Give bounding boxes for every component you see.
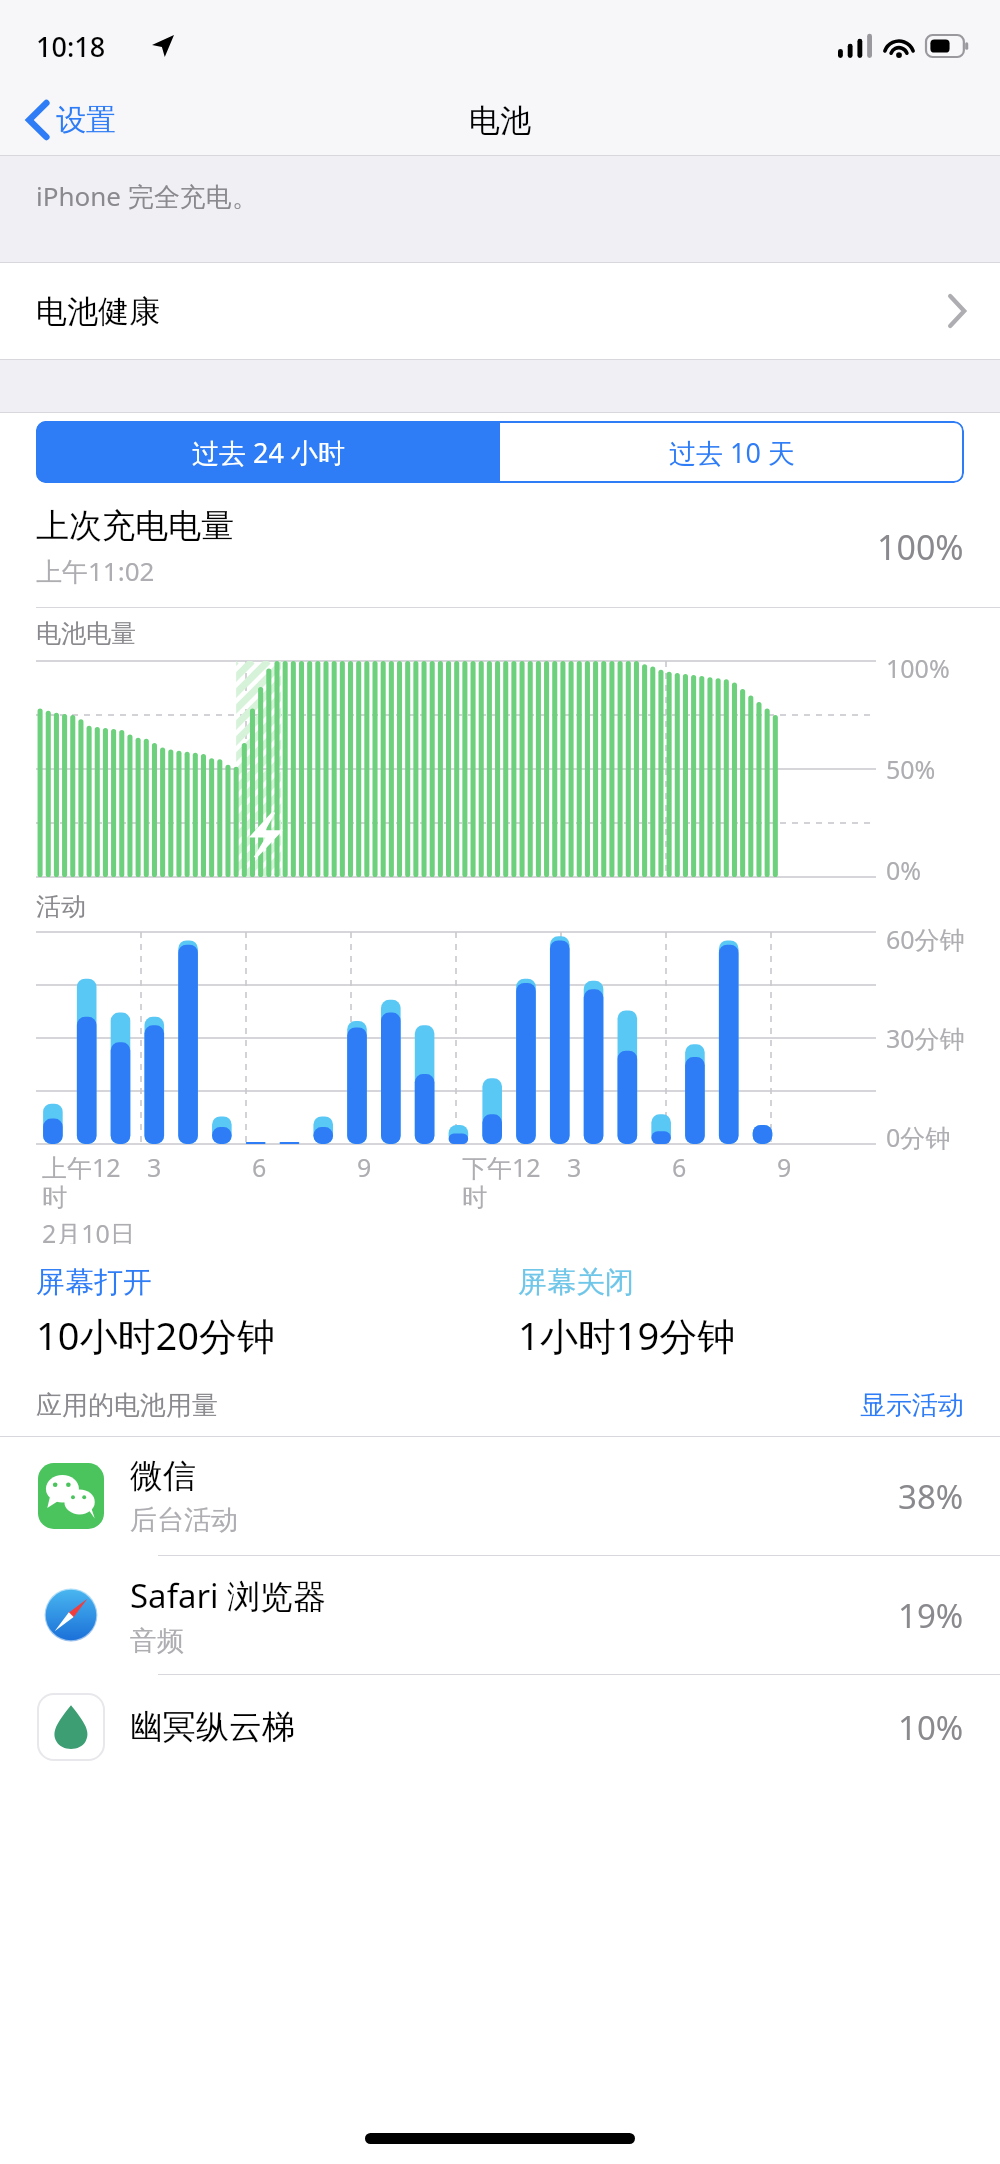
staticText: 微信 — [130, 1455, 196, 1497]
staticText: 上午11:02 — [36, 553, 155, 589]
button[interactable]: 设置 — [20, 95, 124, 145]
staticText: 上午12 时 — [42, 1150, 121, 1214]
staticText: 6 — [672, 1150, 687, 1184]
staticText: 3 — [147, 1150, 162, 1184]
staticText: 30分钟 — [886, 1021, 965, 1055]
staticText: 60分钟 — [886, 922, 965, 956]
staticText: 过去 10 天 — [669, 434, 795, 471]
button[interactable]: 过去 24 小时 — [36, 421, 500, 483]
staticText: 10:18 — [36, 28, 106, 65]
staticText: Safari 浏览器 — [130, 1573, 327, 1618]
staticText: 下午12 时 — [462, 1150, 541, 1214]
staticText: 2月10日 — [42, 1216, 135, 1244]
staticText: 100% — [886, 651, 950, 685]
staticText: 音频 — [130, 1624, 184, 1658]
staticText: 1小时19分钟 — [518, 1309, 736, 1361]
staticText: 屏幕关闭 — [518, 1264, 634, 1301]
staticText: 显示活动 — [860, 1389, 964, 1422]
staticText: 过去 24 小时 — [192, 434, 345, 471]
button[interactable]: Safari 浏览器 — [0, 1556, 1000, 1674]
staticText: 后台活动 — [130, 1503, 238, 1537]
button[interactable]: 幽冥纵云梯 — [0, 1675, 1000, 1779]
staticText: 电池 — [469, 101, 531, 140]
button[interactable]: 电池健康 — [0, 263, 1000, 359]
staticText: 活动 — [36, 891, 86, 922]
button[interactable]: 过去 10 天 — [500, 421, 964, 483]
staticText: 10% — [898, 1705, 964, 1750]
staticText: 9 — [357, 1150, 372, 1184]
staticText: 应用的电池用量 — [36, 1389, 218, 1422]
staticText: 100% — [877, 524, 964, 570]
staticText: 电池健康 — [36, 292, 160, 331]
staticText: 屏幕打开 — [36, 1264, 152, 1301]
staticText: 6 — [252, 1150, 267, 1184]
staticText: 10小时20分钟 — [36, 1309, 275, 1361]
staticText: 上次充电电量 — [36, 505, 234, 547]
staticText: 0% — [886, 853, 922, 887]
staticText: 0分钟 — [886, 1120, 951, 1154]
button[interactable]: 微信 — [0, 1437, 1000, 1555]
staticText: 50% — [886, 752, 936, 786]
staticText: 幽冥纵云梯 — [130, 1706, 295, 1748]
button[interactable]: 显示活动 — [860, 1389, 964, 1422]
staticText: 19% — [898, 1593, 964, 1638]
staticText: 电池电量 — [36, 618, 136, 649]
staticText: 3 — [567, 1150, 582, 1184]
staticText: iPhone 完全充电。 — [36, 178, 258, 214]
staticText: 9 — [777, 1150, 792, 1184]
staticText: 设置 — [56, 101, 116, 139]
staticText: 38% — [898, 1474, 964, 1519]
